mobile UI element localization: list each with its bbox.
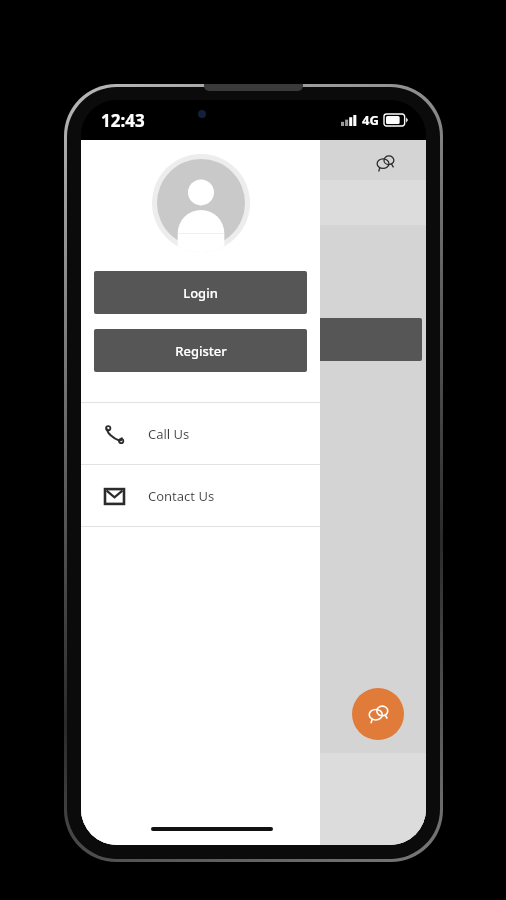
- staticText: Call Us: [148, 425, 190, 443]
- staticText: Contact Us: [148, 487, 215, 505]
- button[interactable]: Register: [94, 329, 307, 372]
- button[interactable]: Profile picture: [152, 154, 250, 252]
- staticText: 12:43: [101, 109, 145, 132]
- button[interactable]: [95, 318, 422, 361]
- staticText: Register: [175, 342, 227, 360]
- staticText: 4G: [362, 111, 379, 129]
- button[interactable]: Messages: [368, 146, 402, 180]
- button[interactable]: Contact Us: [81, 465, 320, 526]
- staticText: Login: [183, 284, 218, 302]
- button[interactable]: Login: [94, 271, 307, 314]
- button[interactable]: Call Us: [81, 403, 320, 464]
- button[interactable]: Chat: [352, 688, 404, 740]
